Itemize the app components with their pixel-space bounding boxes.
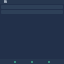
button[interactable]: Tab	[30, 60, 34, 64]
staticText: Hi	[4, 0, 7, 4]
button[interactable]: Tab	[13, 60, 17, 64]
button[interactable]: Tab	[47, 60, 51, 64]
